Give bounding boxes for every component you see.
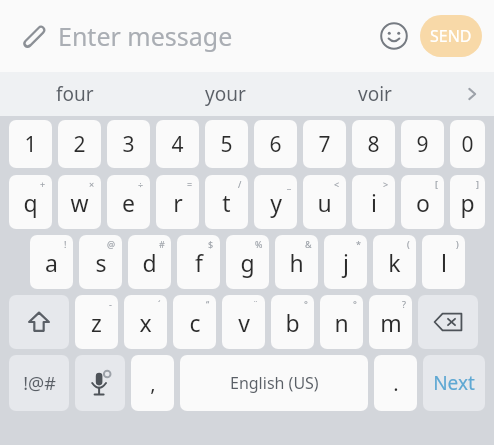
button[interactable]: w <box>58 175 101 229</box>
staticText: ] <box>476 178 479 190</box>
button[interactable]: , <box>131 355 174 411</box>
button[interactable]: . <box>374 355 417 411</box>
button[interactable]: f <box>177 235 220 289</box>
staticText: ! <box>64 238 67 250</box>
button[interactable]: four <box>0 72 150 116</box>
staticText: t <box>222 187 231 218</box>
staticText: _ <box>287 178 291 190</box>
staticText: . <box>393 370 399 397</box>
staticText: e <box>122 187 135 218</box>
staticText: n <box>334 307 349 338</box>
button[interactable]: b <box>271 295 314 349</box>
staticText: ) <box>456 238 459 250</box>
staticText: English (US) <box>230 372 319 394</box>
staticText: four <box>56 81 94 107</box>
staticText: a <box>45 247 58 278</box>
staticText: - <box>109 298 112 310</box>
staticText: h <box>289 247 304 278</box>
staticText: $ <box>208 238 214 250</box>
staticText: 5 <box>220 130 233 159</box>
staticText: , <box>150 370 156 397</box>
staticText: > <box>383 178 389 190</box>
staticText: Enter message <box>58 19 374 53</box>
staticText: [ <box>435 178 438 190</box>
staticText: voir <box>358 81 392 107</box>
button[interactable]: o <box>401 175 444 229</box>
button[interactable]: voir <box>300 72 450 116</box>
staticText: l <box>441 247 447 278</box>
staticText: 8 <box>367 130 380 159</box>
staticText: & <box>305 238 312 250</box>
button[interactable]: k <box>373 235 416 289</box>
button[interactable]: p <box>450 175 485 229</box>
staticText: w <box>70 187 89 218</box>
button[interactable]: g <box>226 235 269 289</box>
staticText: 0 <box>461 130 474 159</box>
button[interactable]: 7 <box>303 120 346 168</box>
button[interactable]: n <box>320 295 363 349</box>
button[interactable]: j <box>324 235 367 289</box>
button[interactable]: 3 <box>107 120 150 168</box>
staticText: your <box>205 81 246 107</box>
staticText: 4 <box>171 130 184 159</box>
button[interactable]: Shift <box>9 295 69 349</box>
button[interactable]: s <box>79 235 122 289</box>
button[interactable]: x <box>124 295 167 349</box>
button[interactable]: t <box>205 175 248 229</box>
staticText: j <box>343 247 349 278</box>
button[interactable]: i <box>352 175 395 229</box>
staticText: d <box>142 247 157 278</box>
button[interactable]: 0 <box>450 120 485 168</box>
button[interactable]: v <box>222 295 265 349</box>
staticText: * <box>356 238 361 250</box>
button[interactable]: y <box>254 175 297 229</box>
staticText: ÷ <box>138 178 144 190</box>
button[interactable]: d <box>128 235 171 289</box>
button[interactable]: your <box>150 72 300 116</box>
button[interactable]: Backspace <box>418 295 478 349</box>
button[interactable]: !@# <box>9 355 69 411</box>
staticText: % <box>255 238 263 250</box>
button[interactable]: 8 <box>352 120 395 168</box>
button[interactable]: 4 <box>156 120 199 168</box>
staticText: @ <box>107 238 116 250</box>
staticText: ( <box>407 238 410 250</box>
button[interactable]: u <box>303 175 346 229</box>
button[interactable]: SEND <box>420 15 482 57</box>
button[interactable]: c <box>173 295 216 349</box>
staticText: !@# <box>23 371 56 396</box>
button[interactable]: 5 <box>205 120 248 168</box>
staticText: v <box>238 307 250 338</box>
button[interactable]: r <box>156 175 199 229</box>
button[interactable]: z <box>75 295 118 349</box>
button[interactable]: 6 <box>254 120 297 168</box>
staticText: = <box>187 178 193 190</box>
staticText: k <box>388 247 401 278</box>
staticText: z <box>91 307 102 338</box>
button[interactable]: 1 <box>9 120 52 168</box>
staticText: / <box>238 178 242 190</box>
staticText: q <box>23 187 38 218</box>
button[interactable]: Attach file <box>12 16 52 56</box>
staticText: f <box>195 247 203 278</box>
staticText: c <box>189 307 201 338</box>
button[interactable]: a <box>30 235 73 289</box>
button[interactable]: 9 <box>401 120 444 168</box>
button[interactable]: l <box>422 235 465 289</box>
button[interactable]: More suggestions <box>450 72 494 116</box>
staticText: p <box>460 187 475 218</box>
button[interactable]: Next <box>423 355 485 411</box>
button[interactable]: e <box>107 175 150 229</box>
button[interactable]: h <box>275 235 318 289</box>
button[interactable]: 2 <box>58 120 101 168</box>
staticText: ´ <box>158 298 161 310</box>
staticText: m <box>380 307 402 338</box>
button[interactable]: English (US) <box>180 355 368 411</box>
staticText: # <box>159 238 165 250</box>
button[interactable]: m <box>369 295 412 349</box>
staticText: i <box>371 187 377 218</box>
button[interactable]: Emoji <box>374 16 414 56</box>
button[interactable]: q <box>9 175 52 229</box>
button[interactable]: Voice input <box>75 355 125 411</box>
staticText: ° <box>353 298 357 310</box>
